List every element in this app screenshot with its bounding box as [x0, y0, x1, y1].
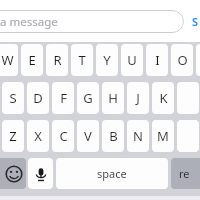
staticText: space [97, 166, 127, 181]
button[interactable]: X [27, 120, 49, 152]
button[interactable]: W [0, 44, 18, 76]
staticText: S [192, 14, 199, 29]
button[interactable]: O [171, 44, 193, 76]
staticText: re [179, 166, 190, 181]
staticText: B [109, 127, 118, 145]
button[interactable] [196, 44, 200, 76]
staticText: W [1, 51, 14, 69]
button[interactable]: G [77, 82, 99, 114]
button[interactable]: Z [2, 120, 24, 152]
button[interactable]: N [127, 120, 149, 152]
staticText: R [53, 51, 62, 69]
staticText: D [33, 89, 43, 107]
button[interactable] [177, 82, 199, 114]
button[interactable]: Emoji [0, 158, 26, 189]
button[interactable]: J [127, 82, 149, 114]
button[interactable]: E [21, 44, 43, 76]
staticText: J [136, 89, 140, 107]
button[interactable]: re [171, 158, 200, 189]
staticText: M [157, 127, 169, 145]
button[interactable]: I [146, 44, 168, 76]
staticText: F [60, 89, 67, 107]
button[interactable]: S [2, 82, 24, 114]
staticText: C [59, 127, 68, 145]
button[interactable]: B [102, 120, 124, 152]
staticText: S [9, 89, 17, 107]
staticText: Y [103, 51, 111, 69]
staticText: I [155, 51, 160, 69]
button[interactable]: C [52, 120, 74, 152]
button[interactable]: Y [96, 44, 118, 76]
staticText: T [78, 51, 86, 69]
button[interactable]: M [152, 120, 174, 152]
button[interactable]: D [27, 82, 49, 114]
staticText: X [34, 127, 42, 145]
staticText: U [127, 51, 137, 69]
staticText: V [84, 127, 92, 145]
button[interactable]: space [56, 158, 168, 189]
staticText: a message [0, 14, 58, 30]
button[interactable]: R [46, 44, 68, 76]
button[interactable]: T [71, 44, 93, 76]
staticText: Z [9, 127, 17, 145]
button[interactable]: Voice input [28, 158, 53, 189]
button[interactable]: F [52, 82, 74, 114]
button[interactable]: Send [192, 12, 200, 30]
button[interactable]: V [77, 120, 99, 152]
staticText: E [28, 51, 36, 69]
button[interactable]: U [121, 44, 143, 76]
button[interactable]: a message [0, 10, 184, 33]
button[interactable]: K [152, 82, 174, 114]
staticText: N [133, 127, 143, 145]
staticText: G [83, 89, 93, 107]
button[interactable]: H [102, 82, 124, 114]
staticText: K [159, 89, 168, 107]
staticText: O [177, 51, 188, 69]
staticText: H [108, 89, 118, 107]
button[interactable] [177, 120, 199, 152]
